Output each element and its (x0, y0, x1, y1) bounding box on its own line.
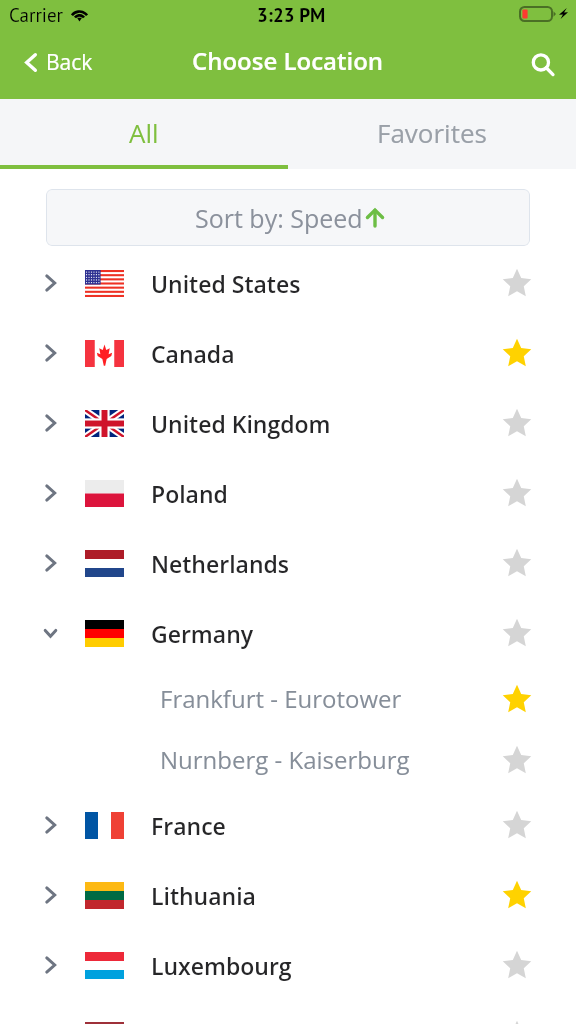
staticText: Germany (151, 618, 254, 649)
button[interactable]: Add to favorites (493, 941, 541, 989)
staticText: Favorites (377, 115, 487, 150)
staticText: Carrier (9, 3, 64, 28)
staticText: Canada (151, 338, 235, 369)
staticText: France (151, 810, 226, 841)
button[interactable]: Lithuania (0, 860, 576, 930)
button[interactable]: Remove from favorites (493, 675, 541, 723)
staticText: United Kingdom (151, 408, 331, 439)
staticText: Back (46, 48, 93, 77)
button[interactable]: Add to favorites (493, 539, 541, 587)
button[interactable]: Netherlands (0, 528, 576, 598)
staticText: Lithuania (151, 880, 256, 911)
button[interactable]: Add to favorites (493, 609, 541, 657)
button[interactable]: Luxembourg (0, 930, 576, 1000)
button[interactable]: Nurnberg - Kaiserburg (0, 729, 576, 790)
button[interactable]: All (0, 99, 288, 169)
staticText: United States (151, 268, 301, 299)
button[interactable]: United Kingdom (0, 388, 576, 458)
button[interactable]: Germany (0, 598, 576, 668)
button[interactable]: Sort by: Speed (46, 189, 530, 246)
button[interactable]: Add to favorites (493, 1011, 541, 1024)
button[interactable]: United States (0, 248, 576, 318)
staticText: Sort by: Speed (195, 201, 363, 235)
staticText: Luxembourg (151, 950, 292, 981)
button[interactable]: Frankfurt - Eurotower (0, 668, 576, 729)
button[interactable]: Canada (0, 318, 576, 388)
button[interactable]: Search (523, 44, 563, 84)
staticText: Netherlands (151, 548, 290, 579)
button[interactable]: Poland (0, 458, 576, 528)
staticText: All (129, 115, 159, 150)
button[interactable]: Add to favorites (493, 399, 541, 447)
button[interactable]: Add to favorites (493, 736, 541, 784)
staticText: Nurnberg - Kaiserburg (160, 743, 410, 776)
staticText: Frankfurt - Eurotower (160, 682, 402, 715)
staticText: 3:23 PM (257, 3, 326, 28)
button[interactable]: Add to favorites (493, 801, 541, 849)
button[interactable]: France (0, 790, 576, 860)
button[interactable]: Latvia (0, 1000, 576, 1024)
button[interactable]: Back (0, 42, 109, 87)
button[interactable]: Remove from favorites (493, 329, 541, 377)
button[interactable]: Add to favorites (493, 469, 541, 517)
staticText: Poland (151, 478, 228, 509)
button[interactable]: Add to favorites (493, 259, 541, 307)
button[interactable]: Remove from favorites (493, 871, 541, 919)
button[interactable]: Favorites (288, 99, 576, 169)
staticText: Choose Location (192, 44, 384, 77)
